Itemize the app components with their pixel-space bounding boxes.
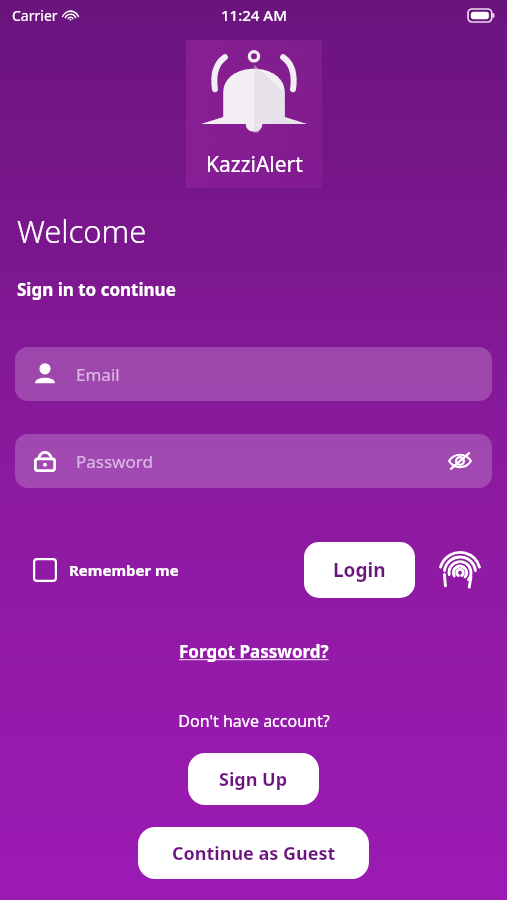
button[interactable]: Sign in with fingerprint <box>435 545 485 595</box>
button[interactable]: Login <box>304 542 415 598</box>
button[interactable]: Show password <box>445 446 475 476</box>
staticText: Remember me <box>69 560 179 580</box>
staticText: 11:24 AM <box>221 5 287 25</box>
staticText: Forgot Password? <box>179 640 329 663</box>
staticText: Password <box>76 450 153 473</box>
staticText: Carrier <box>12 6 58 25</box>
staticText: Sign in to continue <box>17 278 176 301</box>
staticText: Login <box>333 557 386 583</box>
button[interactable]: Email <box>15 347 492 401</box>
staticText: Welcome <box>17 210 147 252</box>
button[interactable]: Forgot Password? <box>173 637 335 666</box>
staticText: Don't have account? <box>178 710 330 732</box>
button[interactable]: Password <box>15 434 492 488</box>
button[interactable]: Remember me <box>33 558 179 582</box>
button[interactable]: Continue as Guest <box>138 827 369 879</box>
staticText: Email <box>76 363 120 386</box>
staticText: Continue as Guest <box>172 841 336 866</box>
staticText: KazziAlert <box>206 150 303 179</box>
button[interactable]: Sign Up <box>188 753 319 805</box>
staticText: Sign Up <box>219 767 288 792</box>
